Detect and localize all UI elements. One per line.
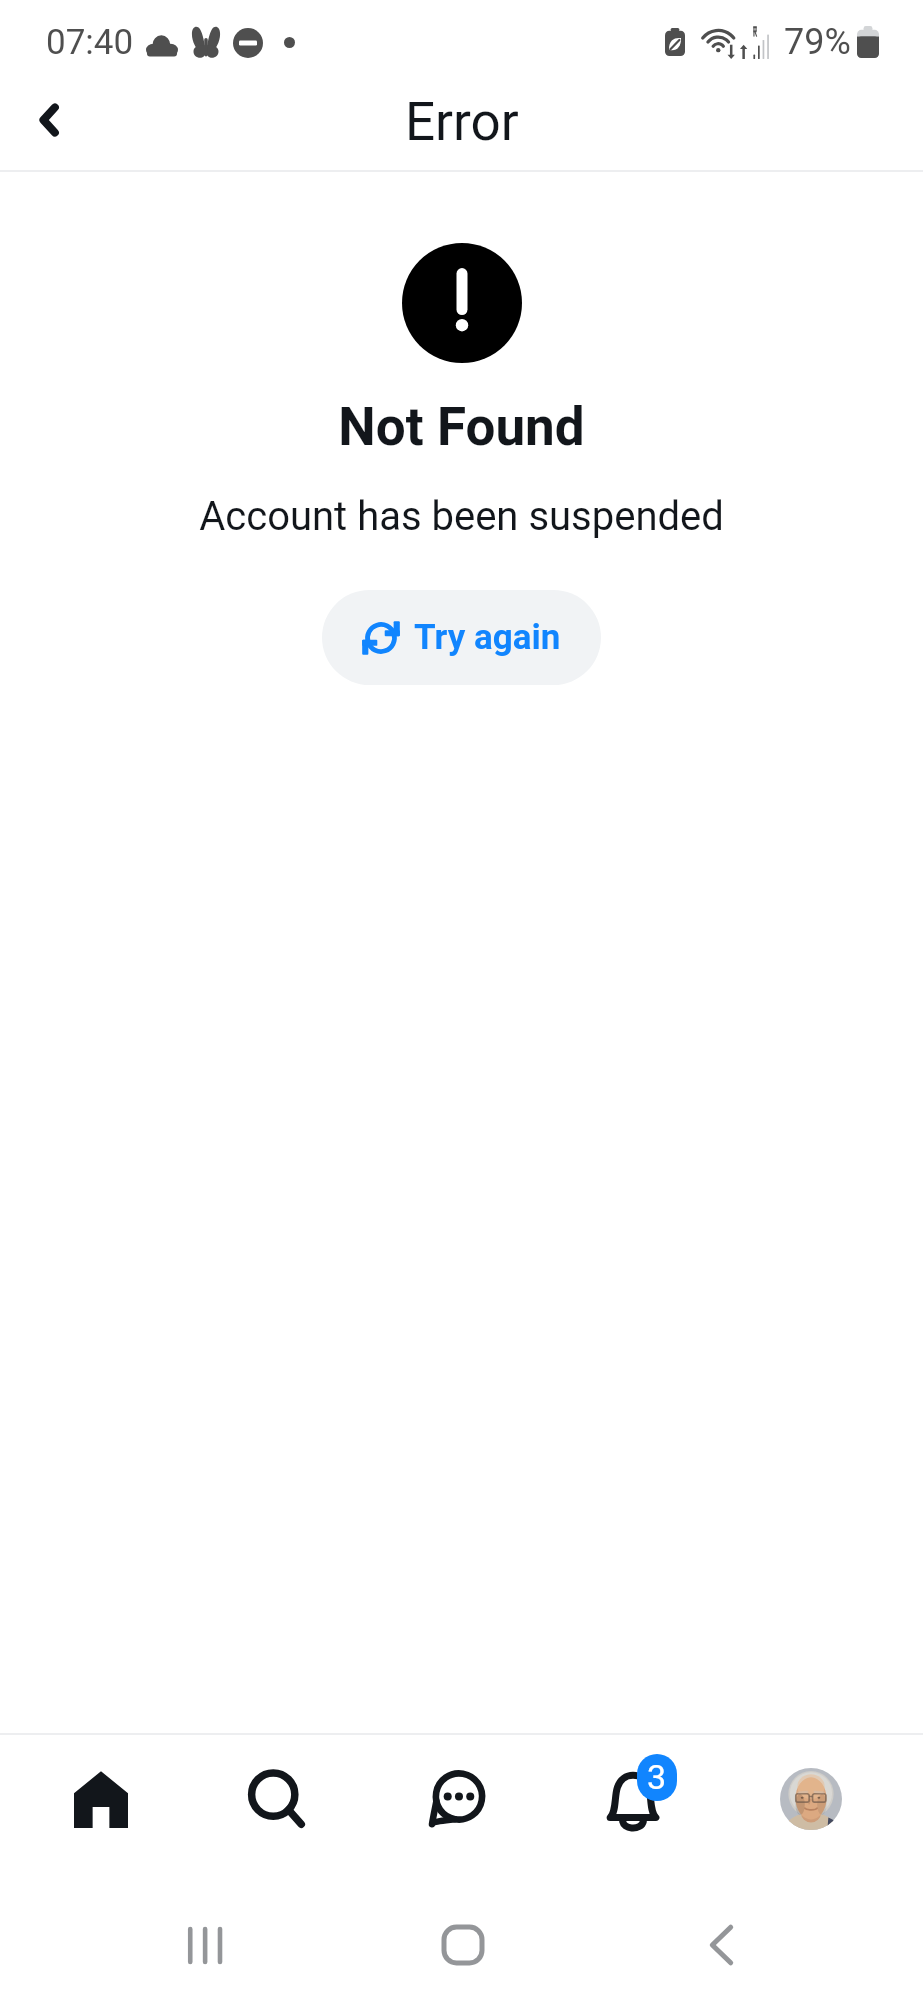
staticText: 07:40 — [46, 22, 134, 63]
staticText: Error — [405, 91, 519, 153]
staticText: 79% — [784, 21, 851, 63]
staticText: Not Found — [338, 396, 585, 458]
staticText: Try again — [414, 617, 561, 658]
staticText: Account has been suspended — [199, 493, 724, 540]
button[interactable]: Try again — [322, 590, 601, 685]
button[interactable]: Back — [635, 1890, 807, 2000]
button[interactable]: Profile — [723, 1736, 899, 1864]
button[interactable]: Home — [12, 1736, 190, 1864]
button[interactable]: Search — [190, 1736, 364, 1864]
button[interactable]: Back — [3, 77, 95, 163]
button[interactable]: Recent apps — [118, 1890, 290, 2000]
button[interactable]: Messages — [368, 1736, 544, 1864]
button[interactable]: Home — [377, 1890, 549, 2000]
button[interactable]: Notifications — [546, 1736, 720, 1864]
staticText: 3 — [647, 1757, 667, 1797]
